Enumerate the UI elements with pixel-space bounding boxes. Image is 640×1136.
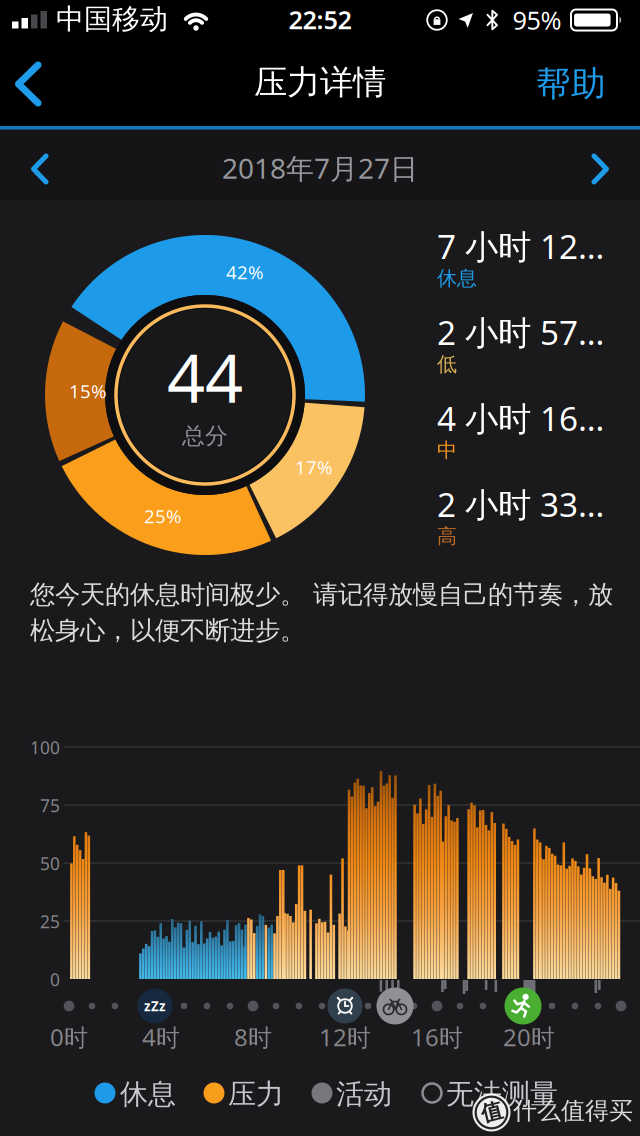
staticText: 值 xyxy=(481,1099,502,1125)
staticText: 42% xyxy=(226,260,264,284)
staticText: 中国移动 xyxy=(56,2,168,36)
staticText: zZz xyxy=(144,997,166,1015)
staticText: 压力详情 xyxy=(254,62,386,103)
staticText: 休息 xyxy=(437,266,477,291)
staticText: 25 xyxy=(40,910,60,933)
staticText: 活动 xyxy=(336,1077,392,1111)
staticText: 休息 xyxy=(120,1077,176,1111)
staticText: 松身心，以便不断进步。 xyxy=(30,615,305,646)
staticText: 4时 xyxy=(142,1021,180,1053)
staticText: 中 xyxy=(437,438,457,463)
staticText: 12时 xyxy=(319,1021,371,1053)
button[interactable]: 前一天 xyxy=(0,0,70,56)
staticText: 4 小时 16… xyxy=(437,396,604,440)
staticText: 无法测量 xyxy=(446,1077,558,1111)
staticText: 75 xyxy=(40,794,60,817)
staticText: 20时 xyxy=(503,1021,555,1053)
staticText: 0 xyxy=(50,968,60,991)
staticText: 22:52 xyxy=(288,3,351,36)
staticText: 压力 xyxy=(228,1077,284,1111)
staticText: 您今天的休息时间极少。 请记得放慢自己的节奏，放 xyxy=(30,579,613,610)
staticText: 总分 xyxy=(182,422,228,450)
button[interactable]: 返回 xyxy=(0,0,56,78)
staticText: 低 xyxy=(437,352,457,377)
button[interactable]: 帮助 xyxy=(528,53,614,115)
staticText: 95% xyxy=(512,3,561,37)
staticText: 44 xyxy=(167,333,243,421)
staticText: 25% xyxy=(144,504,182,528)
staticText: 高 xyxy=(437,524,457,549)
staticText: 什么值得买 xyxy=(513,1096,633,1125)
staticText: 7 小时 12… xyxy=(437,224,604,268)
staticText: 2 小时 33… xyxy=(437,482,604,526)
staticText: 2018年7月27日 xyxy=(222,149,418,187)
staticText: 100 xyxy=(30,736,60,759)
staticText: 8时 xyxy=(234,1021,272,1053)
staticText: 50 xyxy=(40,852,60,875)
staticText: 17% xyxy=(295,455,333,479)
staticText: 15% xyxy=(69,379,107,403)
staticText: 2 小时 57… xyxy=(437,310,604,354)
button[interactable]: 后一天 xyxy=(0,0,640,56)
staticText: 帮助 xyxy=(536,63,606,105)
staticText: 16时 xyxy=(411,1021,463,1053)
staticText: 0时 xyxy=(50,1021,88,1053)
